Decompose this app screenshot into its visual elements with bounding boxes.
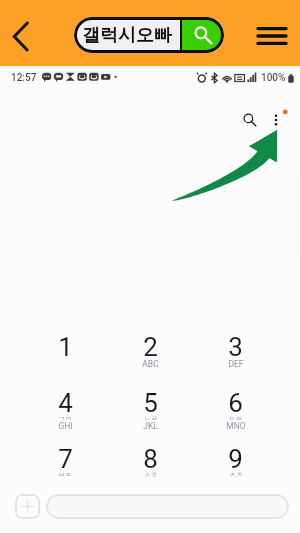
staticText: ㅈㅊ <box>229 470 243 479</box>
staticText: 갤럭시오빠 <box>82 24 172 47</box>
staticText: ㅅㅎ <box>144 470 158 479</box>
staticText: JKL <box>143 421 158 431</box>
button[interactable]: 3 <box>193 318 278 374</box>
staticText: MNO <box>226 421 246 431</box>
button[interactable]: 2 <box>108 318 193 374</box>
staticText: 3 <box>228 332 243 362</box>
staticText: 4 <box>58 388 73 418</box>
button[interactable]: 갤럭시오빠 <box>74 17 224 53</box>
button[interactable]: More options <box>262 106 290 134</box>
staticText: ㅂㅍ <box>58 470 72 479</box>
staticText: 2 <box>143 332 158 362</box>
staticText: 6 <box>228 388 243 418</box>
button[interactable]: Back <box>1 18 40 55</box>
staticText: 1 <box>58 332 73 362</box>
button[interactable]: 5 <box>108 374 193 430</box>
staticText: 12:57 <box>11 72 37 84</box>
button[interactable]: Search <box>236 106 264 134</box>
button[interactable]: 1 <box>22 318 108 374</box>
button[interactable]: 7 <box>22 430 108 486</box>
staticText: ABC <box>142 359 159 369</box>
button[interactable]: 6 <box>193 374 278 430</box>
staticText: ㄱㅋ <box>58 414 72 423</box>
staticText: ㄴㄹ <box>144 414 158 423</box>
staticText: GHI <box>58 421 73 431</box>
staticText: 8 <box>143 444 158 474</box>
button[interactable]: Menu <box>249 17 295 54</box>
button[interactable]: 4 <box>22 374 108 430</box>
staticText: 7 <box>58 444 73 474</box>
staticText: DEF <box>228 359 244 369</box>
staticText: 5 <box>143 388 158 418</box>
button[interactable]: 9 <box>193 430 278 486</box>
staticText: ㄷㅌ <box>229 414 243 423</box>
staticText: 9 <box>228 444 243 474</box>
button[interactable]: 8 <box>108 430 193 486</box>
button[interactable]: Add <box>15 494 40 519</box>
button[interactable]: Phone number input <box>46 494 289 519</box>
staticText: 100% <box>261 72 286 84</box>
